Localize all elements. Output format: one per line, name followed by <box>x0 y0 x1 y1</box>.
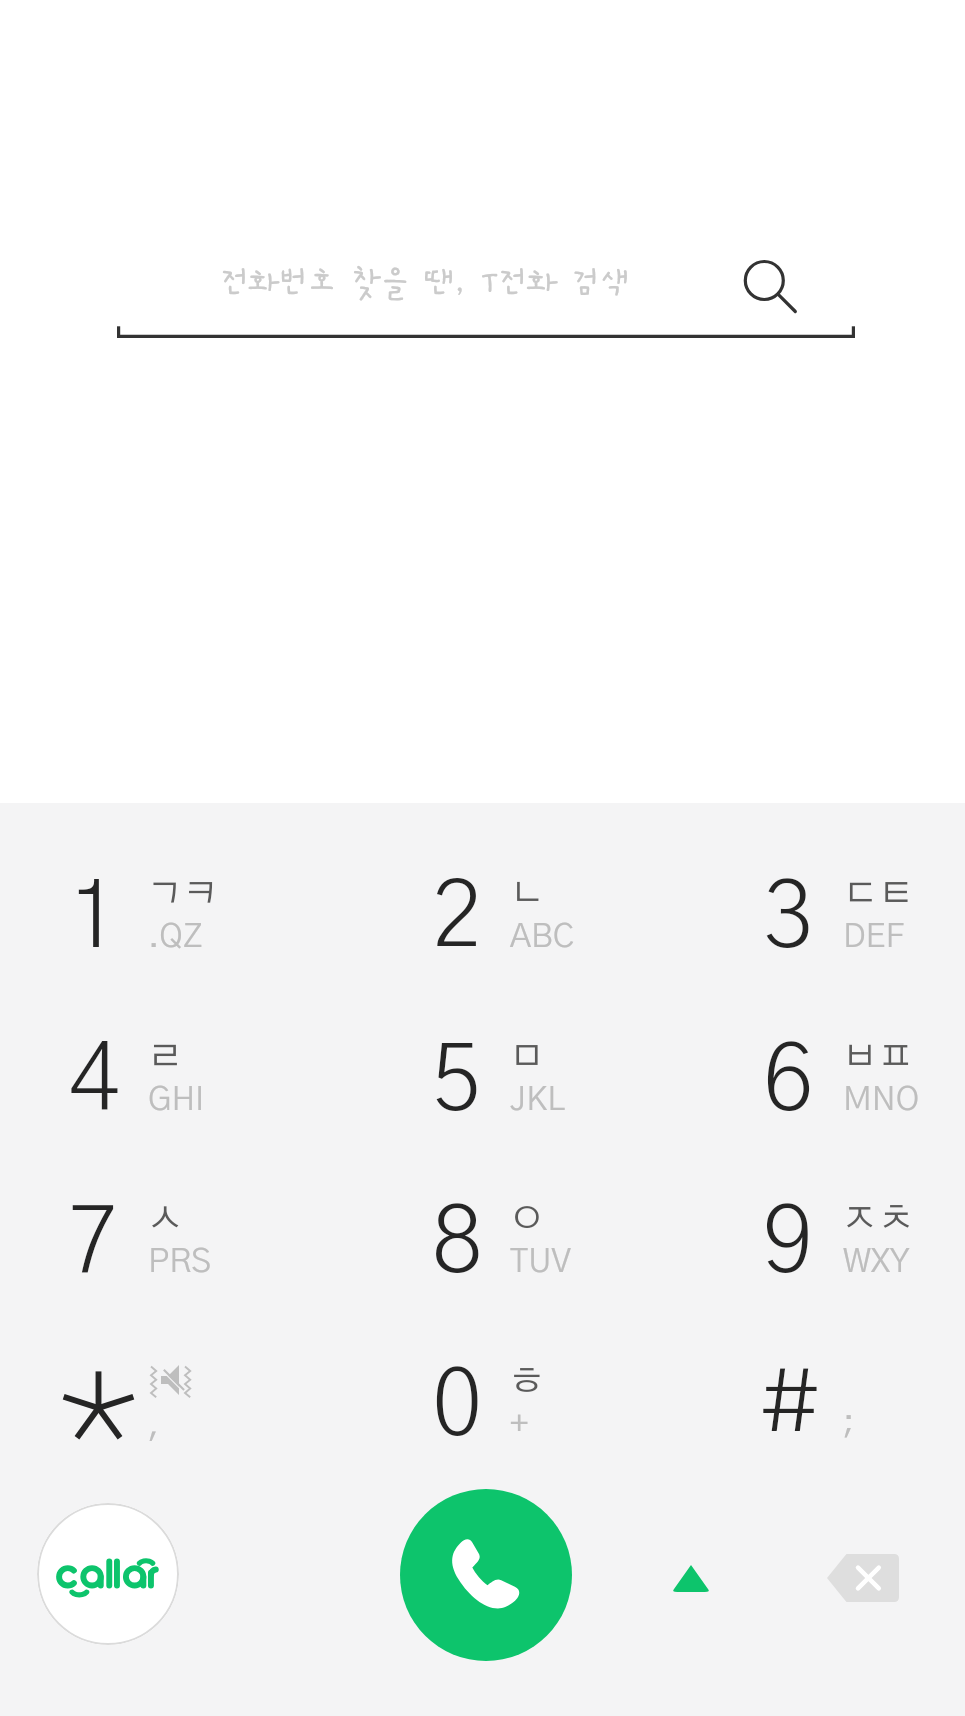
staticText: MNO <box>843 1084 920 1117</box>
button[interactable]: 4 <box>0 974 322 1136</box>
button[interactable]: # <box>643 1298 965 1460</box>
staticText: ㄷㅌ <box>842 876 914 912</box>
staticText: ㅎ <box>509 1364 545 1400</box>
staticText: 2 <box>432 873 483 965</box>
staticText: 5 <box>432 1036 483 1128</box>
staticText: ㅇ <box>509 1201 545 1237</box>
staticText: PRS <box>148 1246 212 1279</box>
button[interactable]: 3 <box>643 812 965 974</box>
staticText: 0 <box>432 1361 483 1453</box>
staticText: + <box>510 1409 529 1442</box>
staticText: ㄹ <box>147 1039 183 1075</box>
button[interactable]: Search <box>735 248 801 314</box>
staticText: ㅈㅊ <box>842 1201 914 1237</box>
staticText: DEF <box>843 921 905 954</box>
staticText: ㅅ <box>147 1201 183 1237</box>
staticText: 7 <box>69 1198 120 1290</box>
staticText: 1 <box>69 873 120 965</box>
staticText: # <box>759 1359 821 1449</box>
staticText: WXY <box>843 1246 910 1279</box>
staticText: .QZ <box>148 921 203 954</box>
staticText: 전화번호 찾을 땐, T전화 검색 <box>220 265 630 300</box>
button[interactable]: 0 <box>322 1298 644 1460</box>
staticText: ; <box>843 1409 855 1442</box>
button[interactable]: , <box>0 1298 322 1460</box>
staticText: ㅁ <box>509 1039 545 1075</box>
staticText: TUV <box>510 1246 571 1279</box>
staticText: 9 <box>763 1198 814 1290</box>
staticText: 8 <box>432 1198 483 1290</box>
staticText: 3 <box>763 873 814 965</box>
staticText: JKL <box>510 1084 565 1117</box>
button[interactable]: 8 <box>322 1136 644 1298</box>
staticText: , <box>148 1409 160 1442</box>
button[interactable]: Backspace <box>813 1528 913 1628</box>
staticText: ABC <box>510 921 575 954</box>
button[interactable]: 5 <box>322 974 644 1136</box>
button[interactable]: 9 <box>643 1136 965 1298</box>
staticText: 4 <box>69 1036 120 1128</box>
staticText: ㄴ <box>509 876 545 912</box>
staticText: GHI <box>148 1084 205 1117</box>
staticText: ㄱㅋ <box>147 876 219 912</box>
button[interactable]: callar <box>37 1503 179 1645</box>
staticText: 6 <box>763 1036 814 1128</box>
button[interactable]: 6 <box>643 974 965 1136</box>
button[interactable]: Expand keypad <box>641 1528 741 1628</box>
button[interactable]: Call <box>400 1489 572 1661</box>
button[interactable]: 1 <box>0 812 322 974</box>
staticText: ㅂㅍ <box>842 1039 914 1075</box>
button[interactable]: 7 <box>0 1136 322 1298</box>
button[interactable]: 전화번호 찾을 땐, T전화 검색 <box>117 250 855 346</box>
button[interactable]: 2 <box>322 812 644 974</box>
